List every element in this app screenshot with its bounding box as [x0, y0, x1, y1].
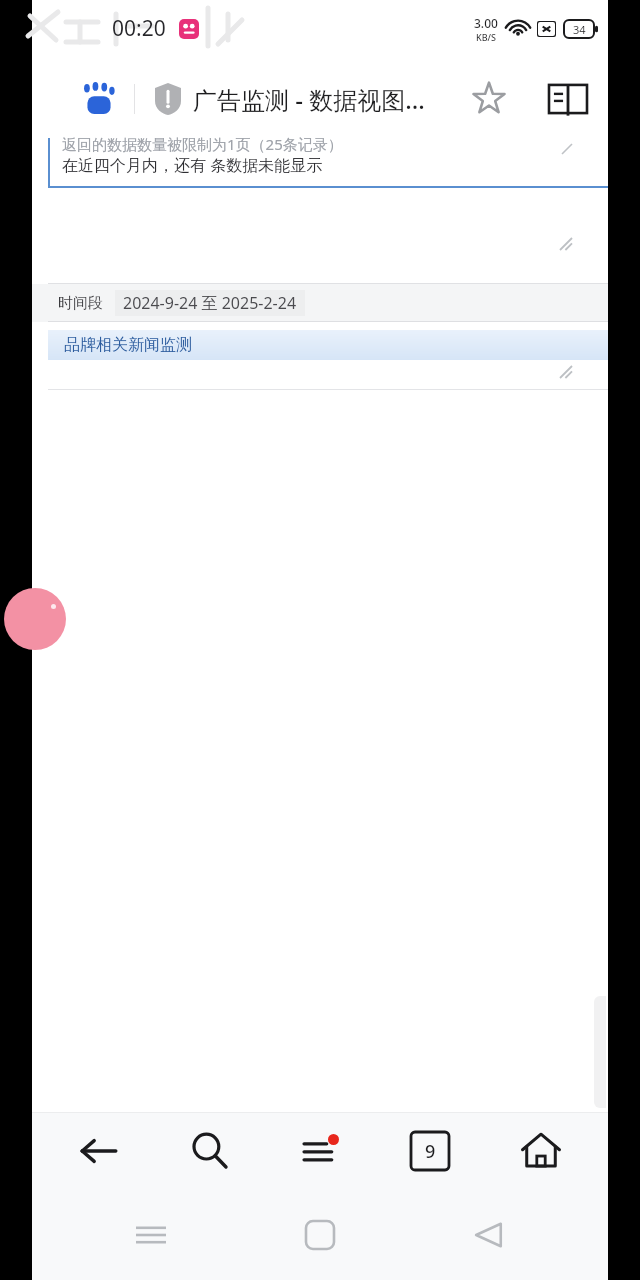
- staticText: 3.00: [474, 15, 498, 31]
- button[interactable]: Reader mode: [542, 73, 594, 125]
- button[interactable]: Menu: [277, 1112, 363, 1190]
- staticText: 9: [425, 1139, 436, 1164]
- staticText: 00:20: [112, 14, 166, 43]
- staticText: 广告监测 - 数据视图...: [193, 83, 466, 116]
- staticText: 返回的数据数量被限制为1页（25条记录）: [62, 134, 343, 154]
- staticText: 34: [573, 22, 586, 37]
- button[interactable]: Back: [56, 1112, 142, 1190]
- staticText: 在近四个月内，还有 条数据未能显示: [62, 154, 323, 176]
- staticText: 时间段: [58, 294, 103, 313]
- button[interactable]: 2024-9-24 至 2025-2-24: [115, 290, 305, 316]
- staticText: 2024-9-24 至 2025-2-24: [123, 292, 297, 314]
- button[interactable]: Tabs: 9: [387, 1112, 473, 1190]
- button[interactable]: Home: [498, 1112, 584, 1190]
- button[interactable]: Search: [167, 1112, 253, 1190]
- button[interactable]: Recents: [101, 1190, 201, 1280]
- button[interactable]: Floating assistant: [4, 588, 66, 650]
- button[interactable]: 广告监测 - 数据视图...: [58, 66, 520, 132]
- button[interactable]: Back: [439, 1190, 539, 1280]
- staticText: 品牌相关新闻监测: [64, 335, 192, 355]
- button[interactable]: Home: [270, 1190, 370, 1280]
- staticText: KB/S: [476, 31, 496, 43]
- button[interactable]: Bookmark: [466, 76, 512, 122]
